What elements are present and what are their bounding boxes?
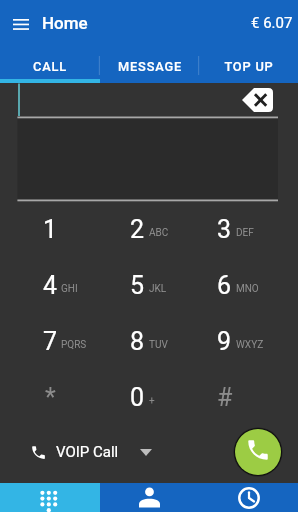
button[interactable]: 1 — [0, 201, 100, 257]
staticText: MNO — [236, 283, 259, 295]
button[interactable]: Contacts — [100, 483, 199, 512]
staticText: € 6.07 — [251, 14, 293, 32]
staticText: DEF — [236, 227, 254, 239]
staticText: 2 — [130, 215, 145, 244]
button[interactable]: Call — [233, 427, 283, 477]
staticText: 4 — [43, 271, 58, 300]
staticText: 9 — [217, 327, 232, 356]
staticText: 8 — [130, 327, 145, 356]
staticText: Home — [42, 13, 88, 33]
staticText: 5 — [130, 271, 145, 300]
button[interactable]: 8 — [100, 313, 199, 369]
button[interactable]: VOIP Call — [30, 443, 152, 461]
button[interactable]: MESSAGE — [100, 47, 199, 83]
button[interactable]: Backspace — [242, 88, 273, 112]
staticText: MESSAGE — [118, 59, 182, 74]
button[interactable]: Dialpad — [0, 483, 100, 512]
button[interactable]: 9 — [199, 313, 298, 369]
staticText: * — [45, 383, 56, 412]
button[interactable]: Recent — [199, 483, 298, 512]
staticText: 7 — [43, 327, 58, 356]
button[interactable]: # — [199, 369, 298, 425]
staticText: JKL — [149, 283, 167, 295]
staticText: ABC — [149, 227, 169, 239]
staticText: 3 — [217, 215, 232, 244]
button[interactable]: 3 — [199, 201, 298, 257]
button[interactable]: 5 — [100, 257, 199, 313]
staticText: TUV — [149, 339, 168, 351]
button[interactable]: TOP UP — [199, 47, 298, 83]
button[interactable]: Menu — [0, 0, 42, 47]
staticText: 0 — [130, 383, 145, 412]
button[interactable]: 4 — [0, 257, 100, 313]
staticText: TOP UP — [224, 59, 274, 74]
staticText: 6 — [217, 271, 232, 300]
staticText: WXYZ — [236, 339, 264, 351]
staticText: GHI — [61, 283, 78, 295]
button[interactable]: 6 — [199, 257, 298, 313]
button[interactable]: 0 — [100, 369, 199, 425]
staticText: VOIP Call — [56, 443, 119, 461]
staticText: # — [217, 383, 233, 412]
button[interactable]: CALL — [0, 47, 100, 83]
staticText: CALL — [33, 59, 67, 74]
button[interactable]: 7 — [0, 313, 100, 369]
staticText: 1 — [43, 215, 58, 244]
button[interactable]: 2 — [100, 201, 199, 257]
button[interactable]: * — [0, 369, 100, 425]
staticText: PQRS — [61, 339, 87, 351]
staticText: + — [149, 395, 155, 407]
